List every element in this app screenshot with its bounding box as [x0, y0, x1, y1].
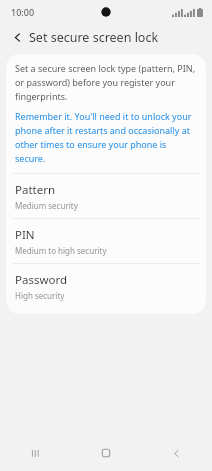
staticText: Medium to high security: [15, 245, 107, 256]
staticText: Medium security: [15, 200, 78, 211]
staticText: High security: [15, 290, 65, 301]
button[interactable]: Back: [7, 27, 27, 47]
staticText: Set a secure screen lock type (pattern, …: [15, 62, 197, 102]
button[interactable]: Pattern: [6, 174, 206, 218]
staticText: Remember it. You'll need it to unlock yo…: [15, 110, 197, 164]
button[interactable]: Back: [141, 435, 212, 471]
staticText: PIN: [15, 227, 35, 243]
staticText: Set secure screen lock: [29, 29, 159, 46]
staticText: Password: [15, 272, 68, 288]
button[interactable]: PIN: [6, 219, 206, 263]
staticText: Pattern: [15, 182, 56, 198]
staticText: 10:00: [11, 6, 35, 18]
button[interactable]: Home: [70, 435, 141, 471]
button[interactable]: Recent apps: [0, 435, 70, 471]
button[interactable]: Password: [6, 264, 206, 308]
